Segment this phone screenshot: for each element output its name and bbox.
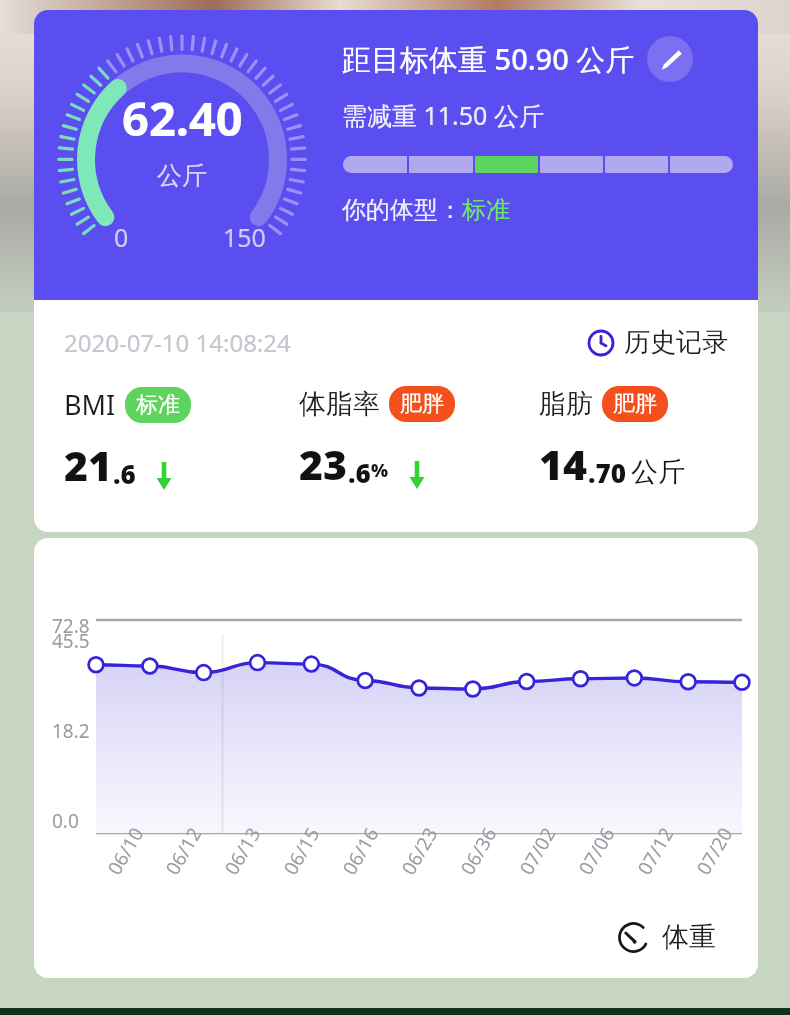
staticText: 体脂率 — [299, 387, 380, 421]
staticText: 150 — [223, 220, 266, 254]
staticText: % — [371, 458, 389, 483]
staticText: 历史记录 — [624, 326, 728, 359]
staticText: 23 — [299, 436, 348, 492]
button[interactable]: BMI — [64, 386, 299, 493]
button[interactable]: Weight metric — [617, 920, 716, 954]
other: Decreasing — [156, 460, 172, 490]
staticText: 06/23 — [395, 822, 443, 880]
staticText: 距目标体重 50.90 公斤 — [342, 39, 635, 79]
staticText: 06/13 — [218, 822, 266, 880]
button[interactable]: 脂肪 — [539, 386, 742, 492]
staticText: 62.40 — [122, 86, 243, 150]
staticText: 你的体型： — [342, 195, 462, 225]
staticText: 标准 — [136, 391, 180, 419]
other: Weight metric — [617, 921, 650, 954]
button[interactable]: 体脂率 — [299, 386, 539, 492]
staticText: BMI — [64, 386, 116, 423]
button[interactable]: 历史记录 — [583, 322, 732, 363]
staticText: 06/36 — [454, 822, 502, 880]
staticText: .6 — [113, 456, 136, 491]
staticText: 2020-07-10 14:08:24 — [64, 326, 291, 359]
staticText: .70 — [588, 455, 626, 490]
staticText: 06/16 — [336, 822, 384, 880]
staticText: 06/12 — [159, 822, 207, 880]
staticText: 脂肪 — [539, 387, 593, 421]
staticText: 07/02 — [513, 822, 561, 880]
staticText: 07/12 — [631, 822, 679, 880]
staticText: 07/20 — [690, 822, 738, 880]
staticText: 07/06 — [572, 822, 620, 880]
staticText: 45.5 — [52, 628, 90, 654]
staticText: 06/10 — [101, 822, 149, 880]
staticText: 体重 — [662, 920, 716, 954]
staticText: 72.8 — [52, 613, 90, 639]
staticText: 14 — [539, 436, 588, 492]
staticText: 18.2 — [52, 718, 90, 744]
button[interactable]: Edit target weight — [647, 36, 693, 82]
staticText: 肥胖 — [613, 390, 657, 418]
staticText: 肥胖 — [400, 390, 444, 418]
staticText: 21 — [64, 437, 113, 493]
staticText: 公斤 — [631, 455, 685, 489]
staticText: 0 — [114, 220, 129, 254]
staticText: 需减重 11.50 公斤 — [342, 98, 544, 132]
staticText: 06/15 — [277, 822, 325, 880]
staticText: 0.0 — [52, 808, 79, 834]
other: Decreasing — [409, 459, 425, 489]
staticText: .6 — [348, 455, 371, 490]
staticText: 标准 — [462, 195, 510, 225]
staticText: 公斤 — [157, 160, 207, 191]
